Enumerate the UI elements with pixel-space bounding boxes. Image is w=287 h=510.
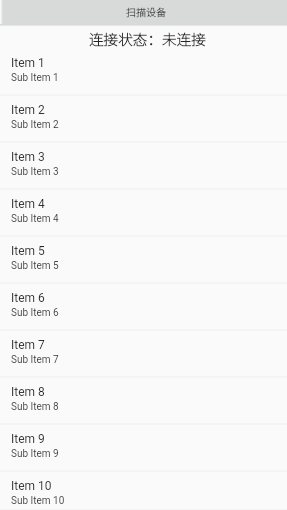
button[interactable]: Item 6 bbox=[0, 283, 287, 330]
staticText: Item 2 bbox=[11, 103, 45, 117]
staticText: Sub Item 9 bbox=[11, 448, 59, 460]
staticText: 连接状态：未连接 bbox=[89, 28, 206, 48]
staticText: Sub Item 4 bbox=[11, 213, 59, 225]
button[interactable]: Item 1 bbox=[0, 48, 287, 95]
button[interactable]: Item 2 bbox=[0, 95, 287, 142]
staticText: Sub Item 3 bbox=[11, 166, 59, 178]
staticText: Sub Item 1 bbox=[11, 72, 59, 84]
button[interactable]: Item 10 bbox=[0, 471, 287, 510]
button[interactable]: Item 5 bbox=[0, 236, 287, 283]
staticText: Item 4 bbox=[11, 197, 45, 211]
button[interactable]: Item 3 bbox=[0, 142, 287, 189]
staticText: Sub Item 7 bbox=[11, 354, 59, 366]
staticText: Item 8 bbox=[11, 385, 45, 399]
staticText: Sub Item 5 bbox=[11, 260, 59, 272]
staticText: Sub Item 6 bbox=[11, 307, 59, 319]
staticText: Item 6 bbox=[11, 291, 45, 305]
staticText: 扫描设备 bbox=[126, 4, 166, 18]
staticText: Item 7 bbox=[11, 338, 45, 352]
staticText: Item 10 bbox=[11, 479, 52, 493]
staticText: Item 9 bbox=[11, 432, 45, 446]
button[interactable]: Item 8 bbox=[0, 377, 287, 424]
staticText: Sub Item 10 bbox=[11, 495, 65, 507]
button[interactable]: 扫描设备 bbox=[5, 0, 287, 22]
button[interactable]: Item 4 bbox=[0, 189, 287, 236]
button[interactable]: Item 9 bbox=[0, 424, 287, 471]
staticText: Item 5 bbox=[11, 244, 45, 258]
staticText: Sub Item 8 bbox=[11, 401, 59, 413]
button[interactable]: Item 7 bbox=[0, 330, 287, 377]
staticText: Item 3 bbox=[11, 150, 45, 164]
staticText: Sub Item 2 bbox=[11, 119, 59, 131]
staticText: Item 1 bbox=[11, 56, 45, 70]
